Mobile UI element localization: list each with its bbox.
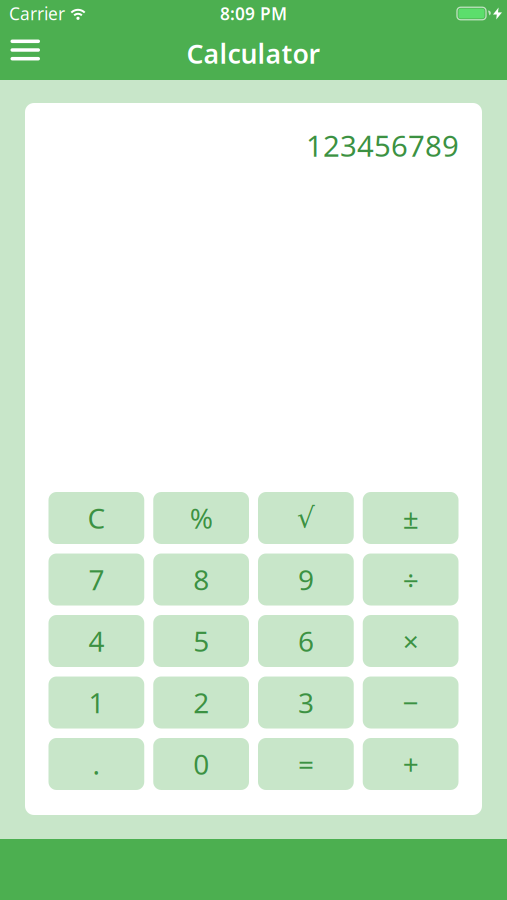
staticText: 5 — [193, 622, 209, 660]
staticText: 9 — [298, 561, 314, 598]
staticText: √ — [297, 502, 315, 534]
button[interactable]: = — [258, 738, 354, 790]
staticText: ÷ — [403, 561, 419, 598]
staticText: + — [403, 745, 419, 783]
staticText: 123456789 — [306, 126, 459, 165]
staticText: = — [298, 745, 314, 783]
staticText: C — [87, 499, 105, 537]
button[interactable]: Menu — [0, 37, 40, 70]
button[interactable]: 9 — [258, 553, 354, 605]
button[interactable]: 5 — [153, 615, 249, 667]
staticText: 3 — [298, 684, 314, 721]
staticText: 0 — [193, 745, 209, 783]
staticText: 6 — [298, 622, 314, 660]
button[interactable]: 8 — [153, 553, 249, 605]
button[interactable]: × — [363, 615, 459, 667]
staticText: . — [92, 745, 100, 783]
button[interactable]: 0 — [153, 738, 249, 790]
button[interactable]: − — [363, 676, 459, 728]
staticText: 8:09 PM — [220, 2, 287, 25]
staticText: ± — [403, 499, 419, 537]
staticText: − — [403, 684, 419, 721]
staticText: 2 — [193, 684, 209, 721]
staticText: Calculator — [186, 36, 320, 71]
staticText: 7 — [88, 561, 104, 598]
staticText: × — [403, 622, 419, 660]
button[interactable]: ÷ — [363, 553, 459, 605]
button[interactable]: ± — [363, 492, 459, 544]
button[interactable]: + — [363, 738, 459, 790]
button[interactable]: . — [48, 738, 144, 790]
button[interactable]: 4 — [48, 615, 144, 667]
staticText: Carrier — [9, 2, 65, 25]
button[interactable]: 2 — [153, 676, 249, 728]
staticText: 8 — [193, 561, 209, 598]
staticText: 1 — [88, 684, 104, 721]
staticText: 4 — [88, 622, 104, 660]
button[interactable]: 7 — [48, 553, 144, 605]
button[interactable]: √ — [258, 492, 354, 544]
button[interactable]: C — [48, 492, 144, 544]
button[interactable]: % — [153, 492, 249, 544]
button[interactable]: 1 — [48, 676, 144, 728]
button[interactable]: 3 — [258, 676, 354, 728]
staticText: % — [190, 499, 213, 537]
button[interactable]: 6 — [258, 615, 354, 667]
